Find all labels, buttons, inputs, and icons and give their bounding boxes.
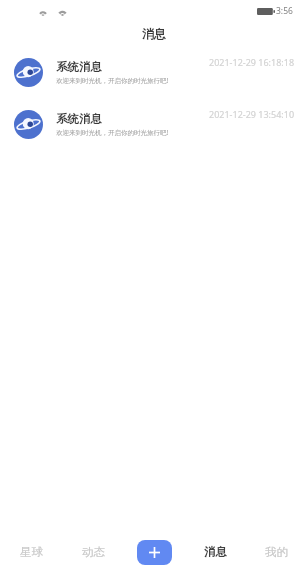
button[interactable]: 动态 <box>62 537 124 567</box>
staticText: 系统消息 <box>56 112 102 126</box>
staticText: 星球 <box>20 545 43 559</box>
staticText: 3:56 <box>276 5 293 17</box>
button[interactable]: 星球 <box>0 537 62 567</box>
staticText: 消息 <box>204 545 227 559</box>
button[interactable]: 消息 <box>185 537 246 567</box>
button[interactable]: Add <box>137 540 172 565</box>
staticText: 我的 <box>265 545 288 559</box>
staticText: 2021-12-29 16:18:18 <box>209 56 295 68</box>
button[interactable]: 系统消息 <box>0 98 307 150</box>
button[interactable]: 系统消息 <box>0 46 307 98</box>
staticText: 2021-12-29 13:54:10 <box>209 108 295 120</box>
staticText: 消息 <box>142 27 166 42</box>
button[interactable]: 我的 <box>246 537 307 567</box>
staticText: 欢迎来到时光机，开启你的时光旅行吧! <box>56 128 169 137</box>
staticText: 动态 <box>82 545 105 559</box>
staticText: 欢迎来到时光机，开启你的时光旅行吧! <box>56 76 169 85</box>
staticText: 系统消息 <box>56 60 102 74</box>
